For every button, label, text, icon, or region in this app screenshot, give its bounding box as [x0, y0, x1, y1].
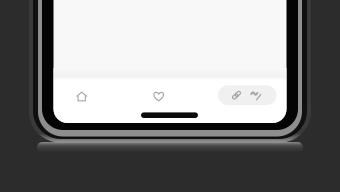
button[interactable]: Favourites	[141, 80, 177, 112]
button[interactable]: Markup	[246, 85, 266, 105]
button[interactable]: Copy link	[226, 85, 246, 105]
button[interactable]: Home	[64, 80, 100, 112]
